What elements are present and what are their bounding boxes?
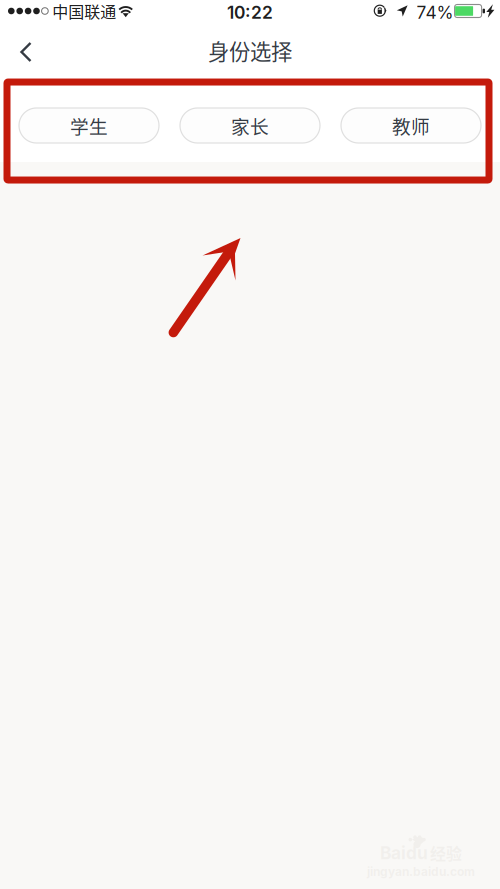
- staticText: 74%: [417, 2, 454, 23]
- staticText: 中国联通: [52, 0, 116, 23]
- staticText: 教师: [392, 112, 430, 139]
- staticText: 学生: [70, 112, 108, 139]
- staticText: Baidu: [380, 842, 428, 863]
- staticText: 经验: [430, 841, 462, 864]
- staticText: jingyan.baidu.com: [367, 864, 475, 879]
- button[interactable]: 学生: [19, 108, 159, 143]
- button[interactable]: 家长: [180, 108, 320, 143]
- button[interactable]: Back: [0, 22, 48, 72]
- button[interactable]: 教师: [341, 108, 481, 143]
- staticText: 10:22: [227, 2, 273, 23]
- staticText: 身份选择: [208, 35, 292, 66]
- staticText: 家长: [231, 112, 269, 139]
